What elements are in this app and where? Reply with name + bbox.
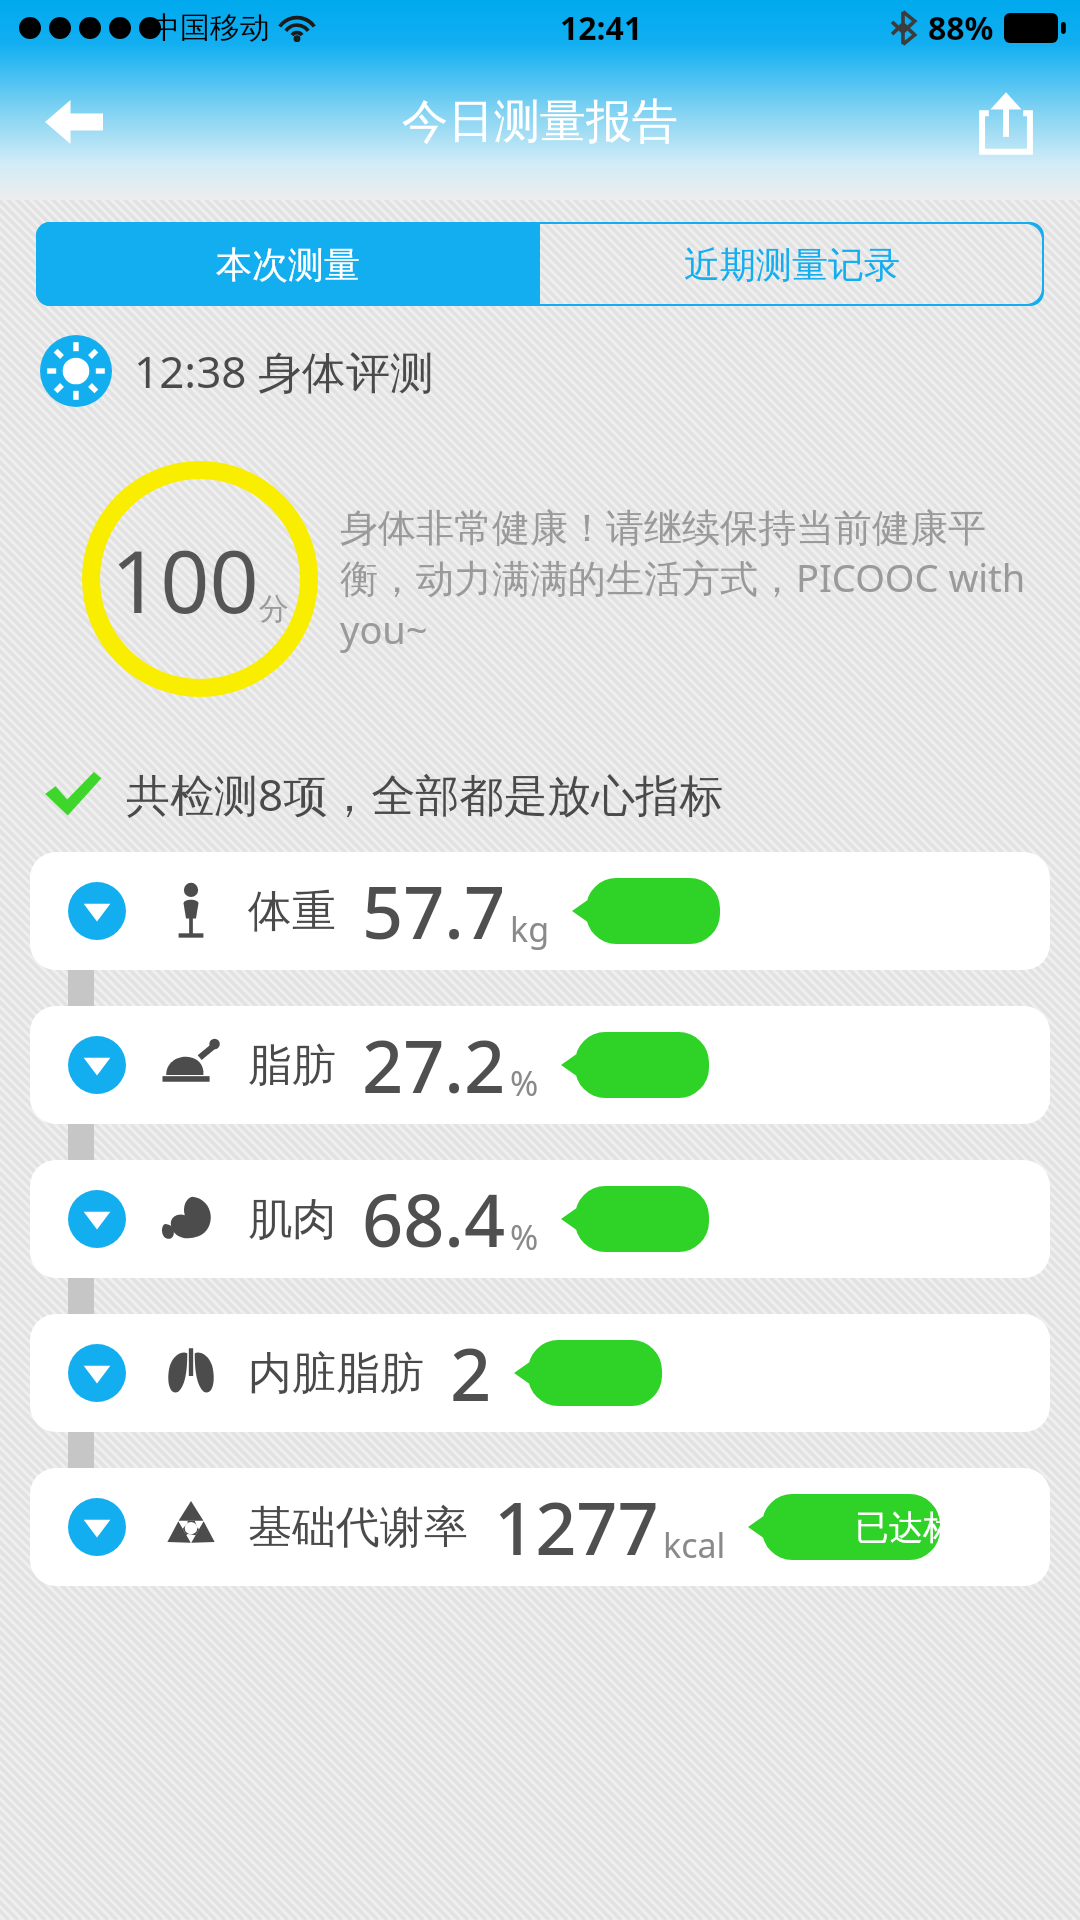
staticText: kg (510, 906, 550, 952)
staticText: 2 (450, 1324, 492, 1422)
button[interactable]: 近期测量记录 (540, 222, 1044, 306)
staticText: 近期测量记录 (684, 242, 900, 287)
staticText: 内脏脂肪 (248, 1346, 424, 1401)
staticText: 肌肉 (248, 1192, 336, 1247)
staticText: 本次测量 (216, 242, 360, 287)
button[interactable]: 基础代谢率 (30, 1468, 1050, 1586)
button[interactable]: 肌肉 (30, 1160, 1050, 1278)
staticText: 12:38 身体评测 (134, 341, 434, 401)
staticText: 1277 (494, 1478, 659, 1576)
staticText: 88% (928, 6, 994, 50)
staticText: 100 (111, 521, 259, 638)
button[interactable]: Share (968, 84, 1044, 160)
staticText: 基础代谢率 (248, 1500, 468, 1555)
button[interactable]: Back (36, 84, 112, 160)
button[interactable]: 体重 (30, 852, 1050, 970)
staticText: 57.7 (362, 862, 506, 960)
staticText: 已达标 (855, 1506, 957, 1549)
staticText: 68.4 (362, 1170, 506, 1268)
staticText: kcal (663, 1522, 726, 1568)
staticText: 27.2 (362, 1016, 506, 1114)
button[interactable]: 内脏脂肪 (30, 1314, 1050, 1432)
staticText: 脂肪 (248, 1038, 336, 1093)
button[interactable]: 脂肪 (30, 1006, 1050, 1124)
staticText: 今日测量报告 (402, 93, 678, 151)
staticText: 身体非常健康！请继续保持当前健康平衡，动力满满的生活方式，PICOOC with… (340, 504, 1052, 655)
button[interactable]: 本次测量 (36, 222, 540, 306)
staticText: 共检测8项，全部都是放心指标 (126, 764, 724, 824)
staticText: 分 (259, 590, 289, 628)
staticText: 12:41 (560, 6, 643, 50)
staticText: 体重 (248, 884, 336, 939)
staticText: % (510, 1214, 539, 1260)
staticText: % (510, 1060, 539, 1106)
staticText: 中国移动 (150, 9, 270, 47)
